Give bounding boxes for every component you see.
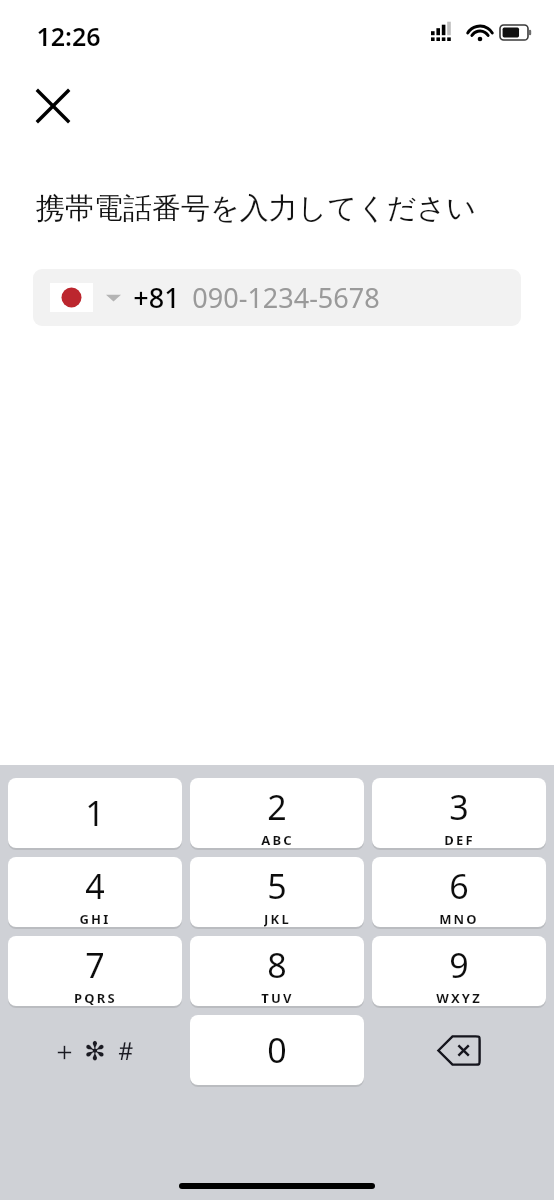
staticText: 090-1234-5678	[192, 279, 380, 316]
staticText: 5	[267, 863, 287, 909]
button[interactable]: 2	[190, 778, 364, 848]
staticText: 8	[267, 942, 287, 988]
button[interactable]: 0	[190, 1015, 364, 1085]
staticText: 7	[85, 942, 105, 988]
staticText: 0	[267, 1027, 287, 1073]
staticText: 4	[85, 863, 105, 909]
staticText: 6	[449, 863, 469, 909]
button[interactable]: ＋ ✻ ＃	[8, 1015, 182, 1085]
button[interactable]: 6	[372, 857, 546, 927]
staticText: MNO	[439, 910, 479, 927]
button[interactable]: 8	[190, 936, 364, 1006]
button[interactable]: 9	[372, 936, 546, 1006]
staticText: 1	[85, 790, 105, 836]
staticText: JKL	[264, 910, 291, 927]
staticText: 携帯電話番号を入力してください	[36, 190, 476, 227]
staticText: ＋ ✻ ＃	[51, 1032, 139, 1068]
button[interactable]: 7	[8, 936, 182, 1006]
staticText: DEF	[444, 831, 475, 848]
staticText: ABC	[261, 831, 294, 848]
button[interactable]: +81	[33, 269, 521, 326]
button[interactable]: 3	[372, 778, 546, 848]
staticText: +81	[133, 279, 180, 316]
button[interactable]: Backspace	[372, 1015, 546, 1085]
staticText: 12:26	[36, 19, 101, 53]
staticText: 3	[449, 784, 469, 830]
staticText: 9	[449, 942, 469, 988]
button[interactable]: 5	[190, 857, 364, 927]
staticText: WXYZ	[436, 989, 482, 1006]
button[interactable]: Close	[29, 82, 77, 130]
staticText: TUV	[261, 989, 294, 1006]
staticText: PQRS	[74, 989, 117, 1006]
button[interactable]: 4	[8, 857, 182, 927]
staticText: 2	[267, 784, 287, 830]
staticText: GHI	[79, 910, 111, 927]
button[interactable]: 1	[8, 778, 182, 848]
